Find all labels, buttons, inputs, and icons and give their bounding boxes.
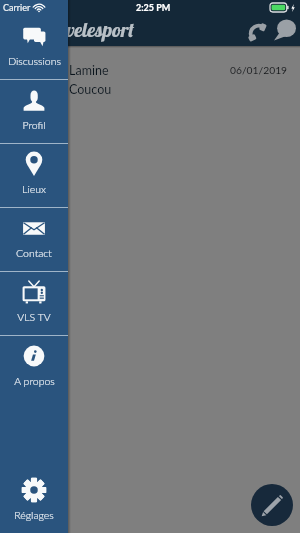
staticText: 2:25 PM bbox=[136, 2, 171, 13]
staticText: Lieux bbox=[22, 183, 46, 196]
button[interactable]: New message bbox=[251, 484, 293, 526]
staticText: Réglages bbox=[14, 509, 54, 522]
button[interactable]: Lamine bbox=[0, 46, 300, 96]
staticText: Discussions bbox=[8, 55, 61, 68]
button[interactable]: Discussions bbox=[0, 14, 68, 79]
button[interactable]: Messages bbox=[270, 15, 300, 45]
button[interactable]: VLS TV bbox=[0, 271, 68, 335]
button[interactable]: Call bbox=[240, 15, 270, 45]
staticText: 06/01/2019 bbox=[230, 64, 288, 76]
staticText: VLS TV bbox=[17, 311, 51, 324]
staticText: Carrier bbox=[3, 2, 31, 13]
staticText: Contact bbox=[16, 247, 52, 260]
button[interactable]: Contact bbox=[0, 207, 68, 271]
button[interactable]: Réglages bbox=[0, 465, 68, 533]
staticText: A propos bbox=[14, 375, 55, 388]
button[interactable]: Profil bbox=[0, 79, 68, 143]
button[interactable]: A propos bbox=[0, 335, 68, 399]
staticText: Coucou bbox=[69, 82, 112, 97]
staticText: Lamine bbox=[69, 63, 109, 78]
button[interactable]: Lieux bbox=[0, 143, 68, 207]
staticText: Profil bbox=[22, 119, 46, 132]
staticText: velesport bbox=[66, 17, 134, 42]
